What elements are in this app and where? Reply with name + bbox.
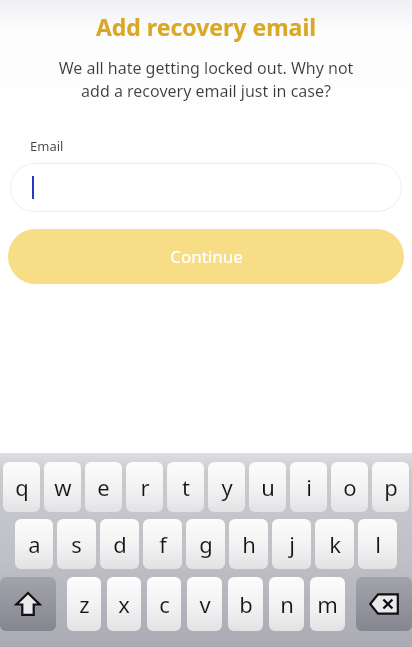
- button[interactable]: Email input field: [10, 163, 402, 212]
- staticText: p: [384, 472, 398, 502]
- staticText: Continue: [170, 245, 243, 268]
- staticText: i: [306, 472, 312, 502]
- staticText: w: [54, 472, 72, 502]
- staticText: q: [15, 472, 29, 502]
- staticText: j: [289, 529, 295, 559]
- staticText: y: [221, 472, 233, 502]
- button[interactable]: m: [310, 577, 345, 631]
- staticText: z: [79, 589, 90, 619]
- staticText: o: [343, 472, 357, 502]
- button[interactable]: t: [167, 462, 204, 512]
- button[interactable]: Shift: [0, 577, 56, 631]
- staticText: d: [113, 529, 127, 559]
- staticText: t: [182, 472, 190, 502]
- button[interactable]: f: [143, 519, 182, 569]
- button[interactable]: e: [85, 462, 122, 512]
- staticText: x: [118, 589, 130, 619]
- button[interactable]: d: [100, 519, 139, 569]
- button[interactable]: s: [57, 519, 96, 569]
- staticText: m: [317, 589, 338, 619]
- staticText: e: [97, 472, 110, 502]
- button[interactable]: Backspace: [356, 577, 412, 631]
- staticText: h: [242, 529, 256, 559]
- button[interactable]: g: [186, 519, 225, 569]
- staticText: s: [71, 529, 82, 559]
- button[interactable]: l: [358, 519, 397, 569]
- staticText: b: [239, 589, 253, 619]
- staticText: g: [199, 529, 213, 559]
- staticText: n: [280, 589, 294, 619]
- button[interactable]: p: [372, 462, 409, 512]
- staticText: Add recovery email: [0, 11, 412, 42]
- button[interactable]: h: [229, 519, 268, 569]
- button[interactable]: Continue: [8, 229, 404, 284]
- button[interactable]: a: [15, 519, 53, 569]
- button[interactable]: q: [3, 462, 40, 512]
- button[interactable]: y: [208, 462, 245, 512]
- button[interactable]: b: [228, 577, 263, 631]
- button[interactable]: w: [44, 462, 81, 512]
- button[interactable]: o: [331, 462, 368, 512]
- staticText: Email: [30, 137, 64, 155]
- button[interactable]: u: [249, 462, 286, 512]
- button[interactable]: c: [147, 577, 181, 631]
- button[interactable]: k: [315, 519, 354, 569]
- staticText: k: [329, 529, 341, 559]
- staticText: c: [159, 589, 170, 619]
- staticText: f: [159, 529, 167, 559]
- button[interactable]: i: [290, 462, 327, 512]
- staticText: We all hate getting locked out. Why not …: [20, 57, 392, 102]
- button[interactable]: z: [67, 577, 101, 631]
- staticText: r: [140, 472, 150, 502]
- button[interactable]: n: [269, 577, 304, 631]
- button[interactable]: r: [126, 462, 163, 512]
- staticText: l: [375, 529, 381, 559]
- button[interactable]: v: [187, 577, 222, 631]
- staticText: u: [261, 472, 275, 502]
- staticText: a: [28, 529, 41, 559]
- staticText: v: [199, 589, 211, 619]
- button[interactable]: j: [272, 519, 311, 569]
- button[interactable]: x: [107, 577, 141, 631]
